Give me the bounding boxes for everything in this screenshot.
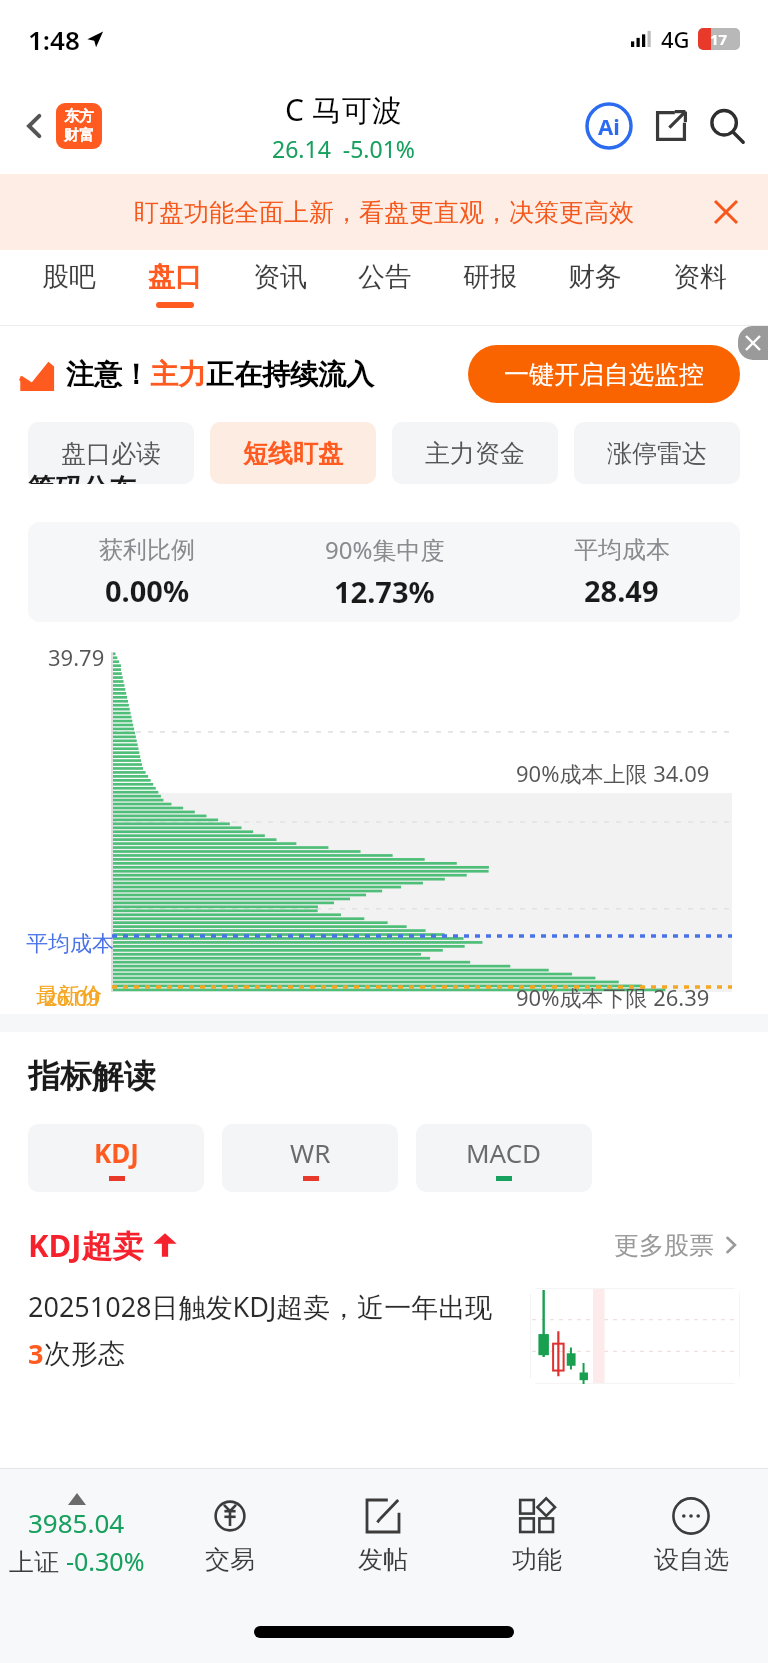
button[interactable]: 涨停雷达 — [574, 422, 740, 484]
staticText: MACD — [466, 1135, 542, 1170]
staticText: 股吧 — [42, 260, 96, 294]
staticText: 17 — [710, 29, 728, 49]
staticText: 26.14 -5.01% — [272, 133, 415, 164]
button[interactable]: Back — [14, 105, 56, 147]
staticText: 研报 — [463, 260, 517, 294]
button[interactable]: Close — [706, 192, 746, 232]
button[interactable]: 交易 — [153, 1496, 306, 1575]
staticText: 涨停雷达 — [607, 438, 707, 469]
staticText: 筹码分布 — [28, 472, 136, 484]
staticText: 28.49 — [584, 571, 659, 610]
button[interactable]: 盯盘功能全面上新，看盘更直观，决策更高效 — [0, 174, 768, 250]
button[interactable]: 资讯 — [227, 250, 332, 302]
staticText: 4G — [661, 24, 690, 54]
staticText: 盘口 — [148, 260, 202, 294]
staticText: 资讯 — [253, 260, 307, 294]
staticText: 资料 — [673, 260, 727, 294]
staticText: 39.79 — [48, 642, 105, 672]
staticText: 平均成本 — [574, 535, 670, 565]
button[interactable]: KDJ超卖 — [28, 1224, 740, 1266]
button[interactable]: 东方财富 — [56, 103, 102, 149]
staticText: 东方 — [64, 107, 94, 126]
button[interactable]: Search — [704, 103, 750, 149]
staticText: 盘口必读 — [61, 438, 161, 469]
button[interactable]: 发帖 — [306, 1496, 460, 1575]
button[interactable]: 主力资金 — [392, 422, 558, 484]
button[interactable]: 盘口必读 — [28, 422, 194, 484]
staticText: 90%成本上限 34.09 — [516, 758, 710, 788]
staticText: Ai — [598, 111, 620, 141]
button[interactable]: 资料 — [647, 250, 752, 302]
staticText: 指标解读 — [28, 1056, 156, 1096]
staticText: -0.30% — [66, 1544, 145, 1578]
staticText: 90%集中度 — [325, 533, 445, 566]
button[interactable]: Close promo — [738, 326, 768, 360]
staticText: 盯盘功能全面上新，看盘更直观，决策更高效 — [134, 197, 634, 228]
staticText: KDJ — [94, 1135, 139, 1170]
staticText: 功能 — [512, 1544, 562, 1575]
staticText: 公告 — [358, 260, 412, 294]
button[interactable]: 一键开启自选监控 — [468, 345, 740, 403]
staticText: 财务 — [568, 260, 622, 294]
button[interactable]: 财务 — [542, 250, 647, 302]
staticText: 短线盯盘 — [243, 438, 343, 469]
button[interactable]: MACD — [416, 1124, 592, 1192]
staticText: 设自选 — [654, 1544, 729, 1575]
button[interactable]: 设自选 — [614, 1496, 768, 1575]
staticText: 获利比例 — [99, 535, 195, 565]
staticText: 3985.04 — [28, 1505, 125, 1540]
staticText: 12.73% — [334, 572, 435, 611]
staticText: 交易 — [205, 1544, 255, 1575]
staticText: 主力资金 — [425, 438, 525, 469]
staticText: WR — [290, 1135, 331, 1170]
staticText: 财富 — [64, 126, 94, 145]
button[interactable]: 盘口 — [122, 250, 227, 308]
staticText: 3 — [28, 1335, 44, 1372]
button[interactable]: WR — [222, 1124, 398, 1192]
staticText: C 马可波 — [285, 89, 402, 130]
button[interactable]: K线图 — [530, 1288, 740, 1384]
button[interactable]: AI — [584, 101, 634, 151]
staticText: 主力 — [150, 357, 206, 392]
button[interactable]: 短线盯盘 — [210, 422, 376, 484]
button[interactable]: 3985.04 — [0, 1493, 153, 1578]
staticText: 最新价 — [36, 982, 102, 1010]
button[interactable]: Share — [648, 103, 694, 149]
staticText: 上证 — [9, 1544, 66, 1578]
button[interactable]: 研报 — [437, 250, 542, 302]
staticText: 发帖 — [358, 1544, 408, 1575]
staticText: 注意！ — [66, 357, 150, 392]
staticText: KDJ超卖 — [28, 1224, 144, 1266]
staticText: 26.09 — [44, 982, 101, 1012]
button[interactable]: 功能 — [460, 1496, 614, 1575]
staticText: 一键开启自选监控 — [504, 359, 704, 390]
staticText: 20251028日触发KDJ超卖，近一年出现 — [28, 1288, 493, 1325]
staticText: 正在持续流入 — [206, 357, 374, 392]
button[interactable]: 股吧 — [16, 250, 122, 302]
button[interactable]: 公告 — [332, 250, 437, 302]
button[interactable]: KDJ — [28, 1124, 204, 1192]
staticText: 90%成本下限 26.39 — [516, 982, 710, 1012]
staticText: 平均成本 — [26, 930, 114, 958]
staticText: 1:48 — [28, 22, 80, 57]
button[interactable]: 获利比例 — [28, 522, 740, 622]
staticText: 次形态 — [44, 1337, 125, 1371]
staticText: 更多股票 — [614, 1230, 714, 1261]
staticText: 0.00% — [105, 571, 190, 610]
